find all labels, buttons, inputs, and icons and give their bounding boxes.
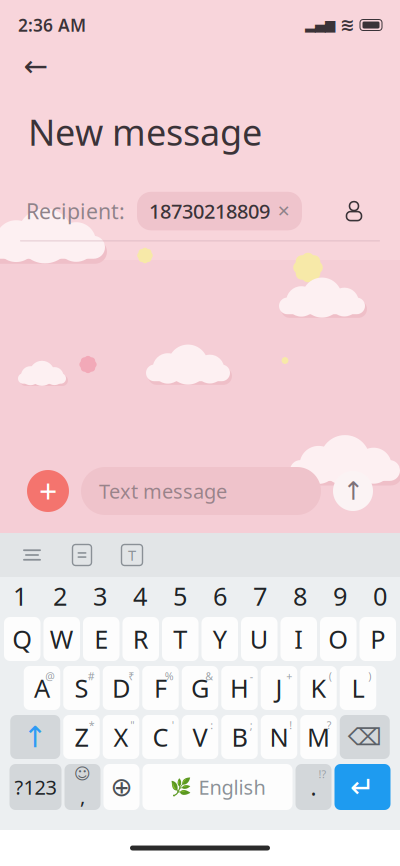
staticText: ↑: [23, 720, 48, 754]
staticText: #: [88, 669, 95, 683]
button[interactable]: Text editing: [116, 540, 148, 570]
button[interactable]: (: [300, 666, 337, 710]
staticText: Y: [213, 622, 227, 656]
button[interactable]: Choose contact: [334, 193, 374, 229]
button[interactable]: Change keyboard language: [103, 764, 139, 810]
staticText: 1: [13, 579, 27, 613]
staticText: ?: [327, 718, 332, 732]
staticText: 2: [53, 579, 67, 613]
button[interactable]: ): [340, 666, 376, 710]
button[interactable]: U: [241, 617, 277, 661]
staticText: :: [210, 718, 213, 732]
staticText: Z: [74, 720, 88, 754]
staticText: ⊕: [110, 772, 132, 802]
staticText: ⌫: [348, 723, 382, 751]
staticText: D: [112, 671, 130, 705]
staticText: W: [50, 622, 74, 656]
staticText: 3: [93, 579, 107, 613]
button[interactable]: !?: [295, 764, 331, 810]
staticText: O: [328, 622, 348, 656]
staticText: %: [165, 669, 174, 683]
staticText: !: [289, 718, 292, 732]
button[interactable]: 1: [0, 579, 40, 613]
staticText: E: [94, 622, 108, 656]
button[interactable]: 9: [320, 579, 360, 613]
button[interactable]: ;: [221, 715, 258, 759]
staticText: ;: [250, 718, 253, 732]
staticText: M: [307, 720, 330, 754]
button[interactable]: 2: [40, 579, 80, 613]
staticText: J: [275, 671, 282, 705]
staticText: 5: [173, 579, 187, 613]
button[interactable]: Keyboard menu: [16, 540, 48, 570]
button[interactable]: Text message: [81, 467, 321, 515]
staticText: 2:36 AM: [18, 13, 86, 36]
button[interactable]: E: [83, 617, 119, 661]
button[interactable]: 8: [280, 579, 320, 613]
staticText: ▂▄▆: [305, 17, 335, 32]
staticText: ≋: [340, 15, 355, 35]
button[interactable]: +: [261, 666, 297, 710]
staticText: H: [230, 671, 249, 705]
staticText: ☺: [74, 765, 91, 783]
button[interactable]: 6: [200, 579, 240, 613]
button[interactable]: Backspace: [340, 715, 390, 759]
button[interactable]: T: [162, 617, 198, 661]
button[interactable]: Space: [142, 764, 292, 810]
button[interactable]: Enter: [334, 764, 390, 810]
staticText: (: [329, 669, 332, 683]
button[interactable]: :: [182, 715, 218, 759]
staticText: -: [250, 669, 253, 683]
button[interactable]: Q: [4, 617, 40, 661]
staticText: I: [294, 622, 303, 656]
staticText: .: [310, 772, 316, 802]
button[interactable]: %: [142, 666, 179, 710]
staticText: +: [286, 669, 292, 683]
button[interactable]: Shift: [10, 715, 60, 759]
button[interactable]: O: [320, 617, 356, 661]
button[interactable]: R: [122, 617, 159, 661]
button[interactable]: -: [221, 666, 258, 710]
staticText: ": [130, 718, 134, 732]
button[interactable]: 0: [360, 579, 400, 613]
staticText: ←: [23, 49, 48, 83]
button[interactable]: Clipboard: [66, 540, 98, 570]
button[interactable]: I: [280, 617, 317, 661]
button[interactable]: #: [63, 666, 100, 710]
button[interactable]: W: [43, 617, 80, 661]
staticText: 18730218809: [149, 198, 270, 224]
button[interactable]: @: [24, 666, 60, 710]
staticText: *: [89, 718, 95, 732]
button[interactable]: &: [182, 666, 218, 710]
staticText: L: [351, 671, 364, 705]
staticText: N: [269, 720, 288, 754]
button[interactable]: 4: [120, 579, 160, 613]
button[interactable]: Back: [14, 46, 58, 86]
button[interactable]: ': [142, 715, 179, 759]
button[interactable]: Y: [201, 617, 238, 661]
staticText: ↑: [342, 477, 363, 505]
staticText: ': [172, 718, 174, 732]
button[interactable]: Emoji and comma: [64, 764, 100, 810]
button[interactable]: ?: [300, 715, 337, 759]
button[interactable]: 18730218809: [137, 192, 302, 230]
staticText: T: [173, 622, 187, 656]
button[interactable]: 3: [80, 579, 120, 613]
button[interactable]: 7: [240, 579, 280, 613]
button[interactable]: !: [261, 715, 297, 759]
button[interactable]: ?123: [9, 764, 61, 810]
staticText: English: [198, 774, 265, 800]
staticText: V: [192, 720, 207, 754]
button[interactable]: Add attachment: [27, 470, 69, 512]
staticText: 🌿: [169, 777, 191, 797]
button[interactable]: ₹: [103, 666, 139, 710]
staticText: ,: [80, 783, 85, 809]
staticText: T: [128, 545, 136, 565]
button[interactable]: 5: [160, 579, 200, 613]
button[interactable]: *: [63, 715, 100, 759]
button[interactable]: Send: [333, 471, 373, 511]
button[interactable]: P: [359, 617, 396, 661]
button[interactable]: ": [103, 715, 139, 759]
staticText: F: [154, 671, 167, 705]
staticText: A: [34, 671, 50, 705]
